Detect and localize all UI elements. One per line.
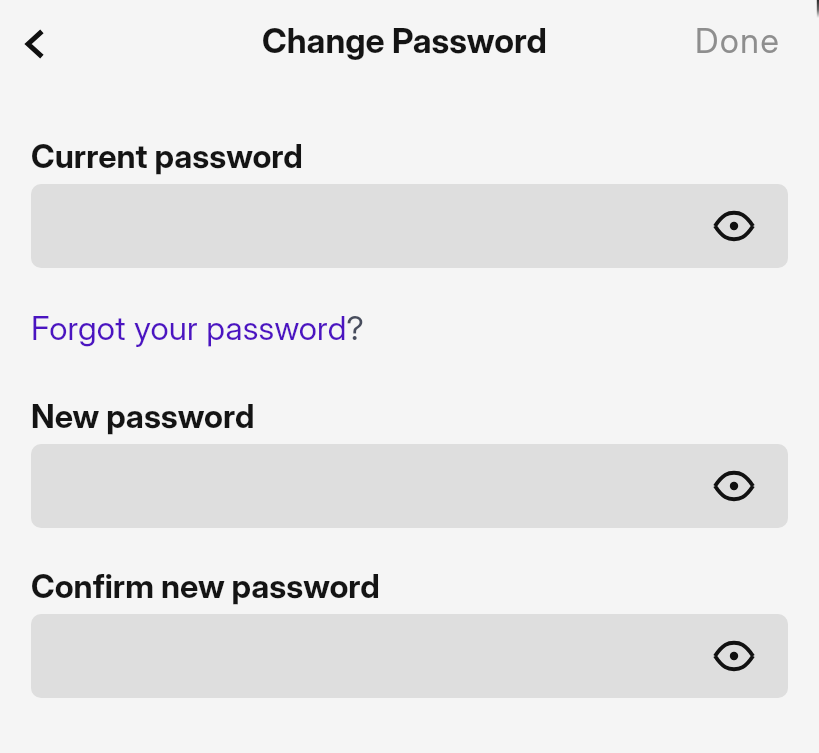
button[interactable]: Show password — [706, 628, 762, 684]
button[interactable]: Show password — [31, 444, 788, 528]
button[interactable]: Show password — [31, 184, 788, 268]
staticText: Forgot your password? — [31, 308, 364, 348]
button[interactable]: Forgot your password? — [31, 308, 364, 348]
staticText: Current password — [31, 136, 303, 175]
button[interactable]: Done — [673, 6, 819, 75]
staticText: New password — [31, 396, 255, 435]
button[interactable]: Show password — [706, 458, 762, 514]
button[interactable]: Show password — [31, 614, 788, 698]
button[interactable]: Back — [7, 16, 63, 72]
staticText: Change Password — [262, 20, 547, 61]
button[interactable]: Show password — [706, 198, 762, 254]
staticText: Confirm new password — [31, 566, 380, 605]
staticText: Done — [695, 20, 781, 61]
